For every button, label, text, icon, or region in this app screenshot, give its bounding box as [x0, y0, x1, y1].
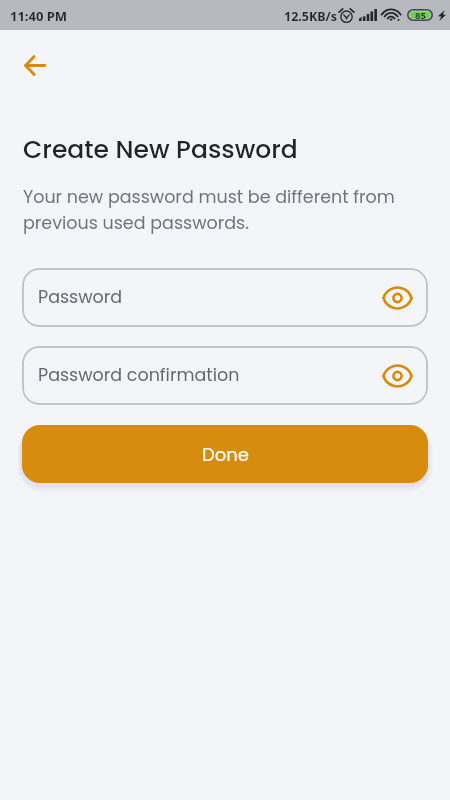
button[interactable]: Password	[22, 268, 428, 327]
button[interactable]: Back	[11, 41, 59, 89]
button[interactable]: Password confirmation	[22, 346, 428, 405]
staticText: Password	[38, 285, 123, 310]
staticText: Done	[202, 442, 249, 467]
staticText: 11:40 PM	[10, 7, 68, 25]
button[interactable]: Show password	[380, 359, 414, 393]
button[interactable]: Done	[22, 425, 428, 483]
staticText: 12.5KB/s	[284, 8, 338, 25]
staticText: Your new password must be different from…	[23, 185, 413, 235]
staticText: 85	[415, 9, 426, 21]
staticText: Create New Password	[23, 132, 298, 167]
staticText: Password confirmation	[38, 363, 240, 388]
button[interactable]: Show password	[380, 281, 414, 315]
